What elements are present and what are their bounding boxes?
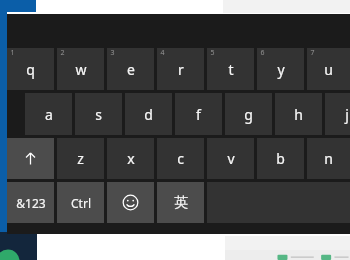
staticText: &123 — [16, 195, 46, 211]
staticText: x — [127, 149, 135, 168]
button[interactable]: x — [107, 138, 154, 179]
button[interactable]: g — [225, 93, 272, 135]
button[interactable]: 4 — [157, 48, 204, 90]
staticText: j — [345, 105, 349, 124]
button[interactable]: n — [307, 138, 350, 179]
staticText: c — [177, 149, 184, 168]
staticText: v — [227, 149, 235, 168]
button[interactable]: f — [175, 93, 222, 135]
staticText: r — [178, 60, 184, 79]
staticText: n — [324, 149, 333, 168]
button[interactable]: 3 — [107, 48, 154, 90]
staticText: 1 — [10, 48, 15, 58]
staticText: 4 — [160, 48, 165, 58]
staticText: 7 — [310, 48, 315, 58]
staticText: w — [75, 60, 87, 79]
staticText: 2 — [60, 48, 65, 58]
staticText: y — [277, 60, 285, 79]
staticText: e — [127, 60, 135, 79]
staticText: 英 — [174, 194, 188, 212]
button[interactable]: b — [257, 138, 304, 179]
staticText: 5 — [210, 48, 215, 58]
button[interactable]: Shift — [7, 138, 54, 179]
button[interactable]: h — [275, 93, 322, 135]
button[interactable]: 5 — [207, 48, 254, 90]
staticText: 6 — [260, 48, 265, 58]
button[interactable]: 1 — [7, 48, 54, 90]
button[interactable]: 6 — [257, 48, 304, 90]
button[interactable]: 2 — [57, 48, 104, 90]
button[interactable]: Ctrl — [57, 182, 104, 223]
staticText: s — [95, 105, 102, 124]
staticText: Ctrl — [71, 195, 91, 211]
button[interactable]: s — [75, 93, 122, 135]
button[interactable]: 英 — [157, 182, 204, 223]
staticText: d — [144, 105, 153, 124]
staticText: f — [196, 105, 201, 124]
staticText: 3 — [110, 48, 115, 58]
staticText: a — [45, 105, 53, 124]
button[interactable]: v — [207, 138, 254, 179]
staticText: g — [244, 105, 253, 124]
button[interactable]: d — [125, 93, 172, 135]
button[interactable]: 7 — [307, 48, 350, 90]
staticText: z — [77, 149, 84, 168]
button[interactable]: j — [325, 93, 350, 135]
button[interactable]: &123 — [7, 182, 54, 223]
staticText: t — [228, 60, 234, 79]
staticText: h — [294, 105, 303, 124]
button[interactable]: Emoji — [107, 182, 154, 223]
staticText: q — [26, 60, 35, 79]
button[interactable]: c — [157, 138, 204, 179]
staticText: b — [276, 149, 285, 168]
button[interactable]: a — [25, 93, 72, 135]
button[interactable]: z — [57, 138, 104, 179]
staticText: u — [324, 60, 333, 79]
